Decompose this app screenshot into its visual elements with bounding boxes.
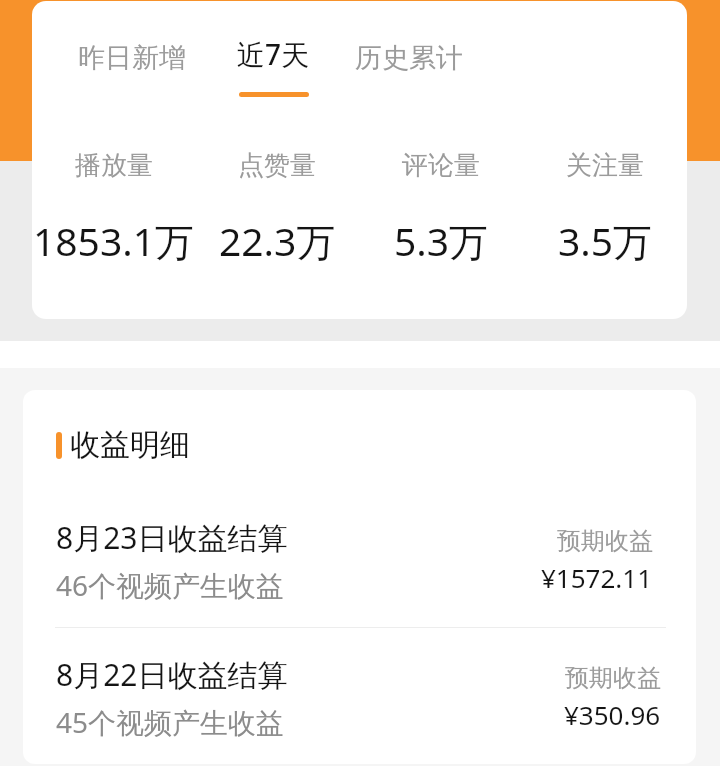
staticText: 播放量	[75, 149, 153, 182]
staticText: 点赞量	[238, 149, 316, 182]
button[interactable]: 近7天	[237, 41, 310, 97]
button[interactable]: 关注量	[523, 149, 687, 267]
staticText: 历史累计	[355, 41, 463, 75]
staticText: ¥1572.11	[541, 560, 653, 595]
staticText: 3.5万	[558, 214, 653, 267]
staticText: 近7天	[237, 35, 310, 69]
staticText: 关注量	[566, 149, 644, 182]
button[interactable]: 8月23日收益结算	[23, 495, 696, 627]
staticText: 5.3万	[394, 214, 489, 267]
button[interactable]: 昨日新增	[78, 41, 186, 75]
staticText: 8月22日收益结算	[56, 654, 288, 695]
staticText: 预期收益	[565, 663, 661, 693]
staticText: 46个视频产生收益	[56, 566, 285, 604]
staticText: 收益明细	[70, 426, 190, 464]
button[interactable]: 历史累计	[355, 41, 463, 75]
staticText: 预期收益	[557, 526, 653, 556]
button[interactable]: 评论量	[359, 149, 523, 267]
staticText: 45个视频产生收益	[56, 703, 285, 741]
staticText: 昨日新增	[78, 41, 186, 75]
staticText: 1853.1万	[33, 214, 194, 267]
staticText: 22.3万	[219, 214, 336, 267]
staticText: 8月23日收益结算	[56, 517, 288, 558]
staticText: 评论量	[402, 149, 480, 182]
button[interactable]: 点赞量	[195, 149, 359, 267]
button[interactable]: 播放量	[32, 149, 195, 267]
staticText: ¥350.96	[564, 697, 661, 732]
button[interactable]: 8月22日收益结算	[23, 628, 696, 764]
